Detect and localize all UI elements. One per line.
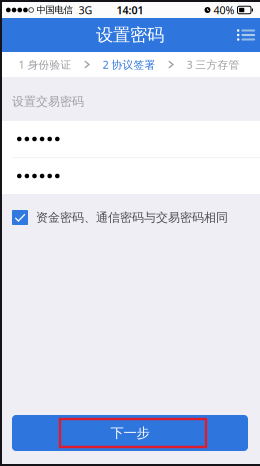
staticText: 1 身份验证 bbox=[18, 57, 71, 72]
staticText: 3G bbox=[72, 3, 92, 17]
staticText: 40% bbox=[210, 3, 237, 17]
staticText: 设置密码 bbox=[96, 24, 164, 46]
staticText: 中国电信 bbox=[33, 4, 72, 16]
staticText: 下一步 bbox=[110, 425, 149, 441]
button[interactable] bbox=[0, 121, 260, 157]
staticText: 资金密码、通信密码与交易密码相同 bbox=[36, 210, 228, 225]
button[interactable]: 资金密码、通信密码与交易密码相同 bbox=[0, 194, 260, 241]
staticText: 设置交易密码 bbox=[12, 94, 84, 109]
staticText: 14:01 bbox=[116, 3, 143, 17]
staticText: 2 协议签署 bbox=[102, 57, 155, 72]
button[interactable]: 下一步 bbox=[12, 415, 248, 451]
staticText: 3 三方存管 bbox=[186, 57, 239, 72]
button[interactable]: Menu bbox=[225, 18, 260, 52]
button[interactable] bbox=[0, 158, 260, 194]
